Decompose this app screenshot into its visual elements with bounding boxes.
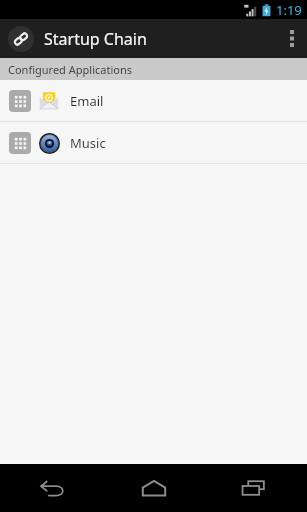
button[interactable]: App icon (8, 26, 34, 52)
staticText: Email (70, 92, 104, 110)
staticText: Startup Chain (44, 28, 147, 50)
button[interactable]: Reorder (0, 122, 307, 163)
button[interactable]: More options (277, 19, 307, 58)
staticText: Configured Applications (8, 62, 132, 77)
button[interactable]: Reorder (0, 80, 307, 121)
other: Reorder (9, 132, 31, 154)
button[interactable]: Home (106, 464, 202, 512)
other: Reorder (9, 90, 31, 112)
button[interactable]: Back (5, 464, 101, 512)
staticText: 1:19 (276, 1, 302, 19)
button[interactable]: Recent apps (206, 464, 302, 512)
staticText: Music (70, 134, 106, 152)
